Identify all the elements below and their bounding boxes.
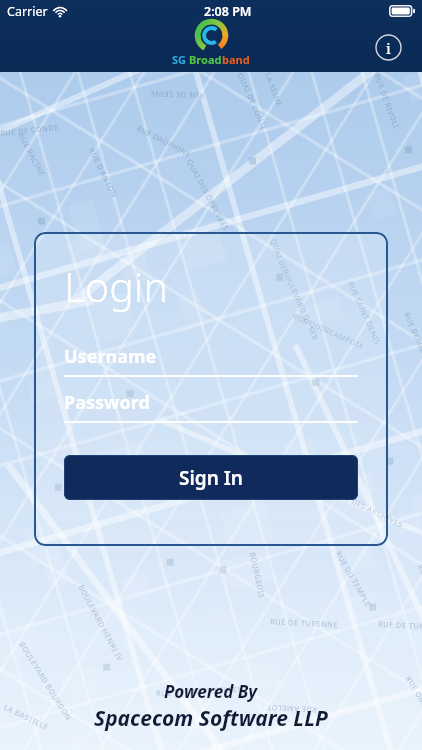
staticText: Username <box>64 344 157 369</box>
staticText: BOULEVARD HENRI IV <box>76 583 126 663</box>
staticText: BOULEVARD DE SEB <box>281 267 321 343</box>
staticText: QUAI DE <box>268 237 289 273</box>
staticText: Carrier <box>7 3 48 20</box>
button[interactable]: Password <box>64 390 358 423</box>
staticText: RUE AMELOT <box>266 703 317 715</box>
staticText: Powered By <box>164 680 258 703</box>
button[interactable]: Sign In <box>64 455 358 500</box>
button[interactable]: Information <box>365 24 411 70</box>
staticText: RUE DE RIVOLI <box>372 72 402 130</box>
staticText: QUAI DES ORFEVRES <box>185 157 231 233</box>
staticText: RUE BERGER <box>402 311 422 359</box>
button[interactable]: Username <box>64 344 358 377</box>
staticText: RUE DE CONDE <box>0 122 59 138</box>
staticText: RUE SAINT DENIS <box>346 279 383 346</box>
staticText: RUE DU TEMPLE <box>333 549 374 609</box>
staticText: RUE DE TUR <box>378 619 422 631</box>
staticText: RUE QUINCAMPOIX <box>291 311 366 351</box>
staticText: RUE RACINE <box>16 131 48 179</box>
staticText: Login <box>64 258 168 314</box>
staticText: Sign In <box>179 465 243 491</box>
staticText: QUAI DE CONTI <box>235 71 269 131</box>
staticText: RUE OBERKAMPF <box>403 674 422 736</box>
staticText: Password <box>64 390 150 415</box>
staticText: LA BASTILLE <box>2 702 51 732</box>
staticText: RUE DAUPHINE <box>135 123 193 159</box>
staticText: BOURGEOIS <box>248 551 267 599</box>
staticText: Spacecom Software LLP <box>94 704 328 733</box>
staticText: RUE DES ARCHIVES <box>334 488 405 530</box>
staticText: RUE DE TURENNE <box>270 616 339 630</box>
staticText: BOULEVARD BOURDON <box>17 640 74 722</box>
staticText: Broad <box>189 52 222 67</box>
staticText: RUE DE SEINE <box>150 89 204 101</box>
staticText: i <box>386 38 391 58</box>
staticText: SG <box>172 52 189 67</box>
staticText: 2:08 PM <box>204 3 252 20</box>
staticText: LA SEINE <box>263 71 285 109</box>
staticText: band <box>222 52 250 67</box>
staticText: RUE D'ANTON <box>87 146 120 200</box>
staticText: RUE DE BRETAGNE <box>416 562 422 632</box>
staticText: RUE DES TOURNELLES <box>156 684 242 698</box>
